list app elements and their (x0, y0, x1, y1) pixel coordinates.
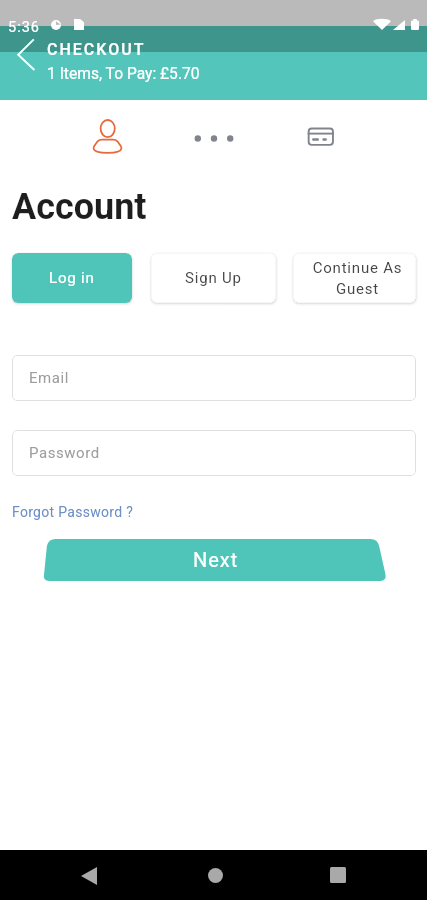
staticText: 1 Items, To Pay: £5.70 (47, 65, 200, 83)
button[interactable]: Home (192, 850, 236, 900)
button[interactable]: Sign Up (151, 253, 276, 303)
staticText: Account (12, 186, 147, 228)
button[interactable]: Log in (12, 253, 132, 303)
button[interactable]: Back (68, 850, 112, 900)
button[interactable]: Password (12, 430, 416, 476)
staticText: 5:36 (8, 19, 40, 36)
staticText: Log in (49, 269, 95, 287)
button[interactable]: Account (86, 114, 129, 158)
button[interactable]: Recent apps (315, 850, 359, 900)
button[interactable]: Back (2, 30, 46, 74)
button[interactable]: More options (192, 116, 236, 156)
button[interactable]: Continue As Guest (293, 253, 416, 303)
staticText: Continue As Guest (310, 259, 405, 298)
button[interactable]: Forgot Password ? (12, 504, 134, 520)
staticText: CHECKOUT (47, 40, 146, 59)
button[interactable]: Payment method (299, 114, 342, 158)
staticText: Sign Up (185, 269, 242, 287)
staticText: Password (29, 444, 100, 462)
button[interactable]: Email (12, 355, 416, 401)
staticText: Email (29, 369, 69, 387)
button[interactable]: Next (38, 535, 393, 585)
staticText: Next (193, 548, 239, 571)
